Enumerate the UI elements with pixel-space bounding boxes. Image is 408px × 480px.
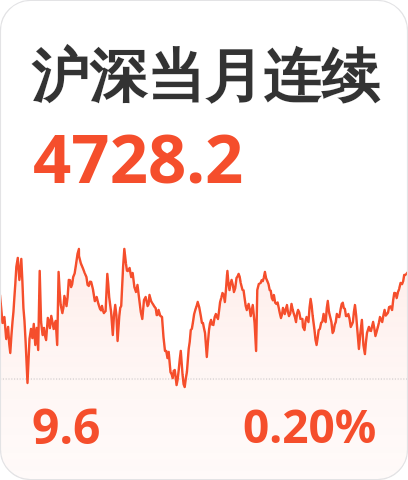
staticText: 9.6 [32,393,101,458]
staticText: 4728.2 [33,111,244,202]
button[interactable]: 沪深当月连续 [0,0,408,480]
staticText: 沪深当月连续 [31,40,379,113]
staticText: 0.20% [243,394,377,457]
